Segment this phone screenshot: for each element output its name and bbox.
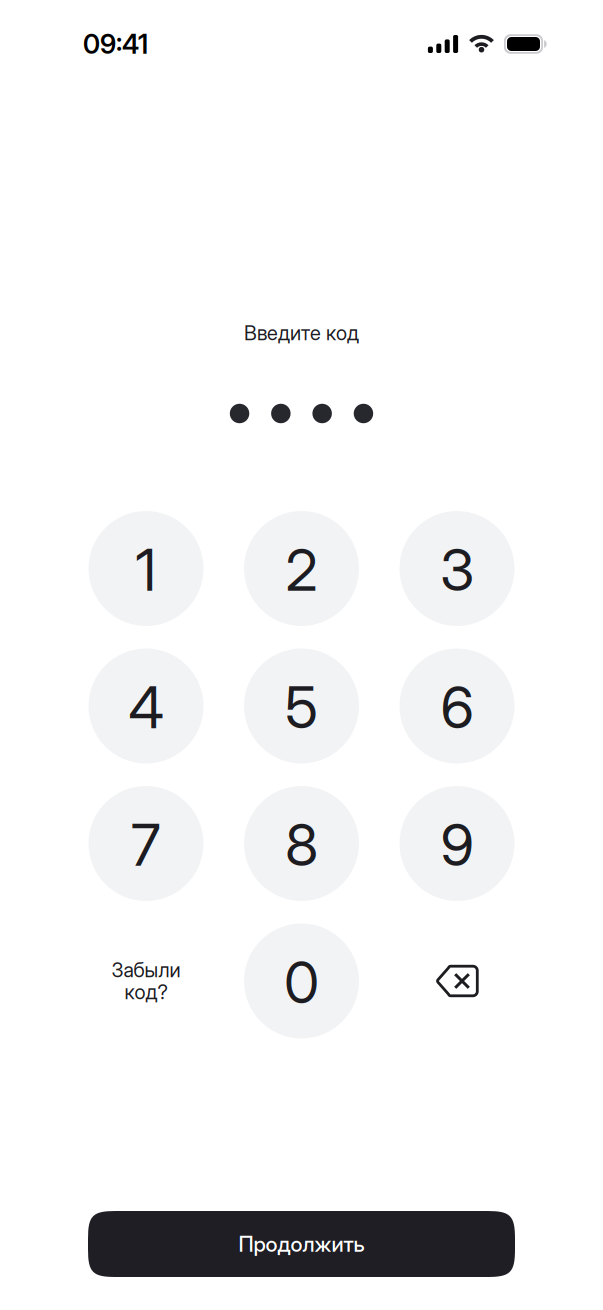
button[interactable]: 4 <box>88 648 203 763</box>
staticText: Продолжить <box>238 1231 364 1257</box>
button[interactable]: 9 <box>399 786 514 901</box>
button[interactable]: 1 <box>88 511 203 626</box>
button[interactable]: 3 <box>399 511 514 626</box>
button[interactable]: 8 <box>244 786 359 901</box>
staticText: 2 <box>285 535 317 605</box>
button[interactable]: 6 <box>399 648 514 763</box>
staticText: 5 <box>285 673 318 742</box>
staticText: 1 <box>135 535 156 605</box>
staticText: 3 <box>440 535 474 605</box>
staticText: 0 <box>284 948 319 1017</box>
staticText: 7 <box>131 810 161 880</box>
staticText: 09:41 <box>83 28 148 60</box>
staticText: 9 <box>440 810 473 880</box>
staticText: 4 <box>128 673 163 742</box>
button[interactable]: 2 <box>244 511 359 626</box>
staticText: Забыли <box>111 958 180 982</box>
button[interactable]: Забыли <box>88 923 203 1038</box>
button[interactable]: Delete <box>399 923 514 1038</box>
button[interactable]: 7 <box>88 786 203 901</box>
button[interactable]: 5 <box>244 648 359 763</box>
staticText: 8 <box>285 810 318 880</box>
staticText: 6 <box>440 673 473 742</box>
staticText: код? <box>124 980 167 1004</box>
button[interactable]: Продолжить <box>88 1211 515 1277</box>
staticText: Введите код <box>244 321 359 345</box>
button[interactable]: 0 <box>244 923 359 1038</box>
